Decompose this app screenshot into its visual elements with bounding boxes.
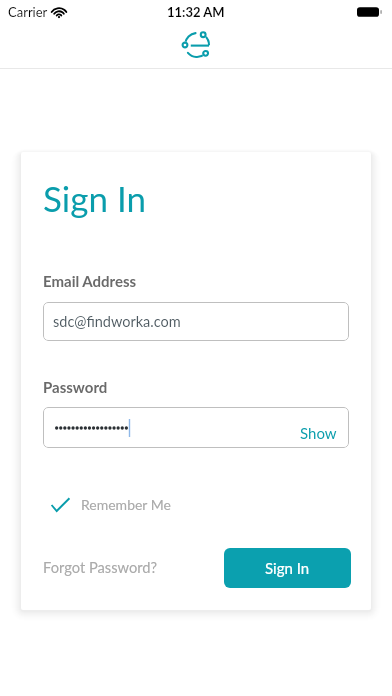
staticText: Email Address — [43, 272, 137, 290]
button[interactable]: Forgot Password? — [43, 554, 158, 580]
staticText: Show — [300, 424, 337, 442]
button[interactable]: Findworka logo — [181, 29, 211, 59]
button[interactable]: sdc@findworka.com — [43, 302, 349, 341]
staticText: Sign In — [265, 559, 310, 577]
button[interactable]: Show — [43, 407, 349, 448]
staticText: Carrier — [8, 4, 48, 20]
staticText: sdc@findworka.com — [53, 313, 181, 330]
staticText: 11:32 AM — [167, 4, 225, 20]
staticText: Sign In — [43, 177, 146, 219]
staticText: Password — [43, 378, 108, 396]
button[interactable]: Remember Me — [43, 492, 171, 517]
staticText: Forgot Password? — [43, 558, 158, 576]
button[interactable]: Show — [300, 424, 337, 442]
staticText: Remember Me — [81, 496, 171, 513]
button[interactable]: Sign In — [224, 548, 351, 588]
